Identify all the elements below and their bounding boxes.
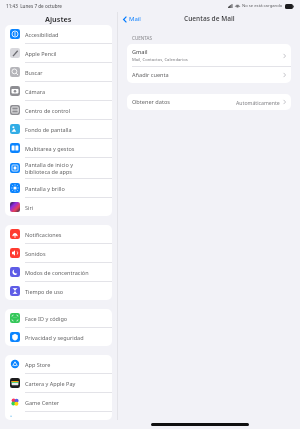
staticText: Añadir cuenta	[132, 71, 283, 79]
button[interactable]: Fondo de pantalla	[5, 120, 112, 138]
staticText: Face ID y código	[25, 315, 68, 322]
staticText: Cuentas de Mail	[184, 14, 235, 23]
staticText: Automáticamente	[236, 99, 280, 106]
staticText: No se está cargando	[242, 3, 283, 9]
staticText: Obtener datos	[132, 98, 236, 106]
button[interactable]: Accesibilidad	[5, 25, 112, 43]
button[interactable]: Pantalla y brillo	[5, 179, 112, 197]
button[interactable]: Game Center	[5, 393, 112, 411]
staticText: Ajustes	[45, 14, 72, 24]
button[interactable]: Apple Pencil	[5, 44, 112, 62]
button[interactable]: Modos de concentración	[5, 263, 112, 281]
button[interactable]: Sonidos	[5, 244, 112, 262]
button[interactable]: App Store	[5, 355, 112, 373]
button[interactable]: iCloud	[5, 412, 112, 420]
staticText: Notificaciones	[25, 231, 62, 238]
staticText: Sonidos	[25, 250, 46, 257]
button[interactable]: Cartera y Apple Pay	[5, 374, 112, 392]
button[interactable]: Tiempo de uso	[5, 282, 112, 300]
staticText: Cámara	[25, 88, 46, 95]
button[interactable]: Buscar	[5, 63, 112, 81]
staticText: Game Center	[25, 399, 60, 406]
staticText: Accesibilidad	[25, 31, 59, 38]
staticText: 11:43 Lunes 7 de octubre	[6, 3, 62, 9]
button[interactable]: Privacidad y seguridad	[5, 328, 112, 346]
staticText: App Store	[25, 361, 51, 368]
other: Atrás	[123, 16, 127, 23]
button[interactable]: Gmail	[127, 44, 291, 66]
staticText: Mail, Contactos, Calendarios	[132, 57, 188, 63]
staticText: Pantalla y brillo	[25, 185, 65, 192]
button[interactable]: Pantalla de inicio y	[5, 158, 112, 178]
staticText: Privacidad y seguridad	[25, 334, 84, 341]
button[interactable]: Centro de control	[5, 101, 112, 119]
staticText: Tiempo de uso	[25, 288, 64, 295]
staticText: Buscar	[25, 69, 43, 76]
staticText: Pantalla de inicio y	[25, 161, 74, 168]
staticText: Centro de control	[25, 107, 71, 114]
staticText: Cartera y Apple Pay	[25, 380, 76, 387]
staticText: Fondo de pantalla	[25, 126, 72, 133]
button[interactable]: Obtener datos	[127, 94, 291, 110]
button[interactable]: Multitarea y gestos	[5, 139, 112, 157]
button[interactable]: Atrás	[121, 13, 143, 25]
staticText: Siri	[25, 204, 34, 211]
staticText: Multitarea y gestos	[25, 145, 75, 152]
button[interactable]: Añadir cuenta	[127, 67, 291, 83]
button[interactable]: Face ID y código	[5, 309, 112, 327]
staticText: Mail	[129, 15, 141, 23]
staticText: CUENTAS	[132, 35, 152, 41]
staticText: Apple Pencil	[25, 50, 57, 57]
button[interactable]: Notificaciones	[5, 225, 112, 243]
staticText: biblioteca de apps	[25, 168, 72, 175]
staticText: Modos de concentración	[25, 269, 89, 276]
button[interactable]: Siri	[5, 198, 112, 216]
button[interactable]: Cámara	[5, 82, 112, 100]
staticText: Gmail	[132, 48, 148, 56]
